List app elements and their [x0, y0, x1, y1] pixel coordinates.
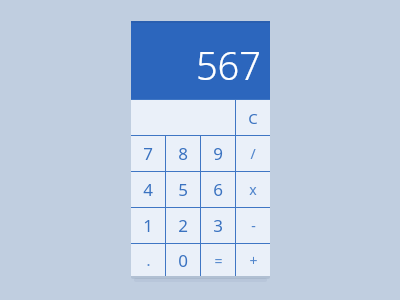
button[interactable]: 0: [166, 244, 200, 276]
staticText: 8: [178, 142, 188, 165]
staticText: +: [249, 251, 258, 270]
staticText: 567: [195, 39, 261, 91]
button[interactable]: x: [236, 172, 270, 207]
button[interactable]: 9: [201, 136, 235, 171]
staticText: 1: [143, 214, 153, 237]
staticText: .: [146, 250, 151, 270]
button[interactable]: 7: [131, 136, 165, 171]
staticText: C: [248, 108, 258, 128]
button[interactable]: -: [236, 208, 270, 243]
button[interactable]: 2: [166, 208, 200, 243]
staticText: 7: [143, 142, 153, 165]
button[interactable]: +: [236, 244, 270, 276]
button[interactable]: 5: [166, 172, 200, 207]
button[interactable]: 8: [166, 136, 200, 171]
button[interactable]: .: [131, 244, 165, 276]
staticText: 4: [143, 178, 153, 201]
staticText: 2: [178, 214, 188, 237]
staticText: x: [249, 180, 257, 199]
staticText: 5: [178, 178, 188, 201]
staticText: 6: [213, 178, 223, 201]
staticText: /: [250, 144, 256, 163]
button[interactable]: =: [201, 244, 235, 276]
button[interactable]: 1: [131, 208, 165, 243]
button[interactable]: 3: [201, 208, 235, 243]
button[interactable]: 6: [201, 172, 235, 207]
button[interactable]: 4: [131, 172, 165, 207]
button[interactable]: C: [236, 100, 270, 135]
staticText: 9: [213, 142, 223, 165]
staticText: 3: [213, 214, 223, 237]
button[interactable]: /: [236, 136, 270, 171]
staticText: 0: [178, 249, 188, 272]
staticText: -: [251, 216, 256, 235]
staticText: =: [214, 251, 223, 270]
